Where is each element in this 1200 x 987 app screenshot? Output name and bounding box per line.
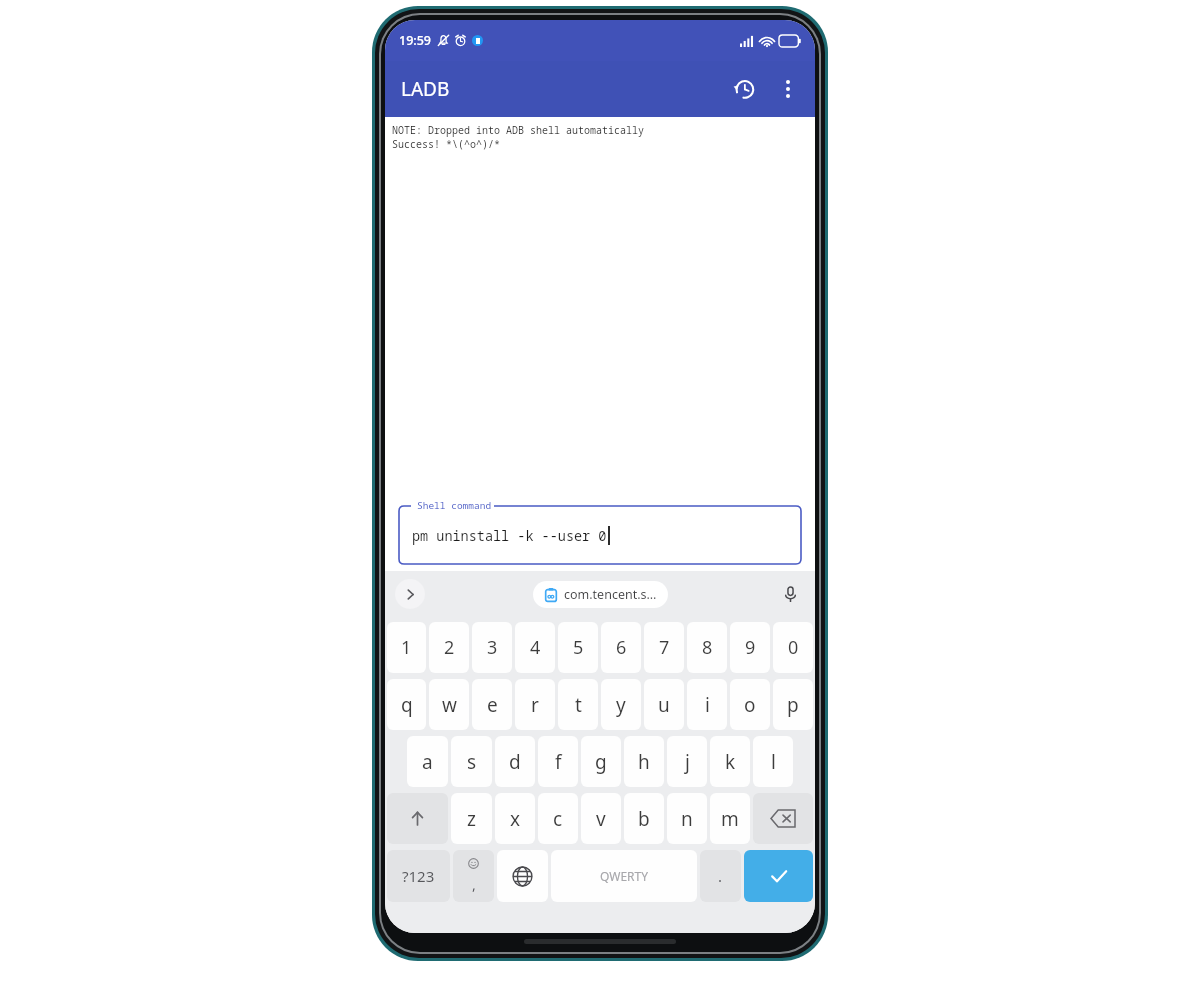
button[interactable]: a [407, 736, 448, 787]
staticText: LADB [401, 76, 450, 102]
button[interactable]: Backspace [753, 793, 813, 844]
button[interactable]: ?123 [387, 850, 450, 902]
button[interactable]: History [721, 66, 767, 112]
button[interactable]: Shift [387, 793, 448, 844]
staticText: a [422, 749, 433, 775]
staticText: f [555, 749, 562, 775]
button[interactable]: d [495, 736, 535, 787]
button[interactable]: 8 [687, 622, 727, 673]
staticText: pm uninstall -k --user 0 [412, 527, 607, 545]
button[interactable]: Change language [497, 850, 548, 902]
staticText: g [595, 749, 607, 775]
button[interactable]: b [624, 793, 664, 844]
staticText: Success! *\(^o^)/* [392, 137, 500, 151]
staticText: Shell command [417, 499, 492, 512]
button[interactable]: 7 [644, 622, 684, 673]
button[interactable]: u [644, 679, 684, 730]
staticText: 19:59 [399, 32, 432, 49]
staticText: , [472, 875, 476, 894]
staticText: q [401, 692, 413, 718]
button[interactable]: s [451, 736, 492, 787]
staticText: c [553, 806, 563, 832]
button[interactable]: 6 [601, 622, 641, 673]
staticText: k [725, 749, 736, 775]
staticText: 0 [788, 635, 799, 660]
button[interactable]: g [581, 736, 621, 787]
staticText: r [531, 692, 539, 718]
staticText: com.tencent.s… [564, 586, 657, 603]
button[interactable]: Emoji and comma [453, 850, 494, 902]
staticText: n [681, 806, 693, 832]
staticText: z [467, 806, 476, 832]
button[interactable]: z [451, 793, 492, 844]
staticText: e [487, 692, 498, 718]
staticText: w [442, 692, 457, 718]
button[interactable]: m [710, 793, 750, 844]
button[interactable]: y [601, 679, 641, 730]
staticText: b [638, 806, 650, 832]
button[interactable]: . [700, 850, 741, 902]
staticText: s [467, 749, 477, 775]
staticText: 7 [659, 635, 670, 660]
staticText: 2 [444, 635, 455, 660]
button[interactable]: j [667, 736, 707, 787]
button[interactable]: f [538, 736, 578, 787]
button[interactable]: e [472, 679, 512, 730]
staticText: y [616, 692, 626, 718]
button[interactable]: 2 [429, 622, 469, 673]
staticText: u [658, 692, 670, 718]
button[interactable]: q [387, 679, 426, 730]
staticText: 4 [530, 635, 541, 660]
staticText: h [638, 749, 650, 775]
staticText: 3 [487, 635, 498, 660]
button[interactable]: Enter [744, 850, 813, 902]
button[interactable]: Space [551, 850, 697, 902]
button[interactable]: x [495, 793, 535, 844]
staticText: 8 [702, 635, 713, 660]
button[interactable]: 5 [558, 622, 598, 673]
staticText: NOTE: Dropped into ADB shell automatical… [392, 123, 644, 137]
staticText: d [509, 749, 521, 775]
button[interactable]: com.tencent.s… [533, 581, 668, 608]
staticText: i [705, 692, 710, 718]
button[interactable]: k [710, 736, 750, 787]
staticText: v [596, 806, 606, 832]
button[interactable]: 4 [515, 622, 555, 673]
button[interactable]: Voice input [775, 579, 805, 609]
button[interactable]: More options [767, 68, 809, 110]
button[interactable]: t [558, 679, 598, 730]
staticText: 5 [573, 635, 584, 660]
button[interactable]: c [538, 793, 578, 844]
staticText: t [575, 692, 582, 718]
button[interactable]: i [687, 679, 727, 730]
button[interactable]: 9 [730, 622, 770, 673]
button[interactable]: r [515, 679, 555, 730]
button[interactable]: 3 [472, 622, 512, 673]
staticText: x [510, 806, 521, 832]
staticText: 9 [745, 635, 756, 660]
button[interactable]: 1 [387, 622, 426, 673]
staticText: ?123 [402, 866, 435, 886]
button[interactable]: Shell command [399, 506, 801, 564]
staticText: p [787, 692, 799, 718]
button[interactable]: o [730, 679, 770, 730]
button[interactable]: h [624, 736, 664, 787]
button[interactable]: Expand toolbar [395, 579, 425, 609]
staticText: 1 [401, 635, 412, 660]
button[interactable]: l [753, 736, 793, 787]
button[interactable]: n [667, 793, 707, 844]
staticText: l [771, 749, 776, 775]
button[interactable]: w [429, 679, 469, 730]
button[interactable]: 0 [773, 622, 813, 673]
staticText: 6 [616, 635, 627, 660]
staticText: j [685, 749, 690, 775]
staticText: o [744, 692, 756, 718]
staticText: m [721, 806, 739, 832]
button[interactable]: p [773, 679, 813, 730]
staticText: QWERTY [600, 868, 649, 884]
button[interactable]: v [581, 793, 621, 844]
staticText: . [718, 866, 723, 886]
